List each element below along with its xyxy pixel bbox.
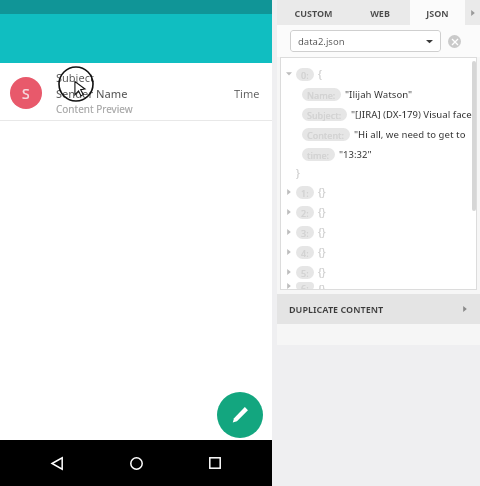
button[interactable]: 0: bbox=[280, 64, 477, 84]
button[interactable]: 2: bbox=[280, 202, 477, 222]
staticText: {} bbox=[318, 282, 326, 290]
button[interactable]: 6: bbox=[280, 282, 477, 290]
staticText: S bbox=[22, 84, 30, 103]
button[interactable]: DUPLICATE CONTENT bbox=[277, 294, 480, 324]
button[interactable]: 3: bbox=[280, 222, 477, 242]
staticText: DUPLICATE CONTENT bbox=[289, 303, 384, 315]
button[interactable]: More tabs bbox=[465, 0, 480, 25]
staticText: data2.json bbox=[298, 35, 345, 48]
button[interactable]: 1: bbox=[280, 182, 477, 202]
staticText: "Hi all, we need to get to this bbox=[354, 128, 477, 141]
staticText: Sender Name bbox=[56, 86, 128, 101]
staticText: { bbox=[318, 67, 322, 81]
button[interactable]: CUSTOM bbox=[277, 0, 350, 25]
staticText: {} bbox=[318, 265, 326, 279]
staticText: 3: bbox=[301, 227, 309, 239]
staticText: 2: bbox=[301, 207, 309, 219]
staticText: {} bbox=[318, 245, 326, 259]
staticText: Subject bbox=[56, 70, 94, 85]
button[interactable]: Compose bbox=[217, 392, 263, 438]
button[interactable]: Back bbox=[44, 450, 70, 476]
staticText: 1: bbox=[301, 187, 309, 199]
staticText: 4: bbox=[301, 247, 309, 259]
staticText: 0: bbox=[301, 69, 309, 81]
staticText: {} bbox=[318, 185, 326, 199]
staticText: "[JIRA] (DX-179) Visual facel bbox=[351, 108, 475, 121]
staticText: "Ilijah Watson" bbox=[345, 88, 413, 101]
button[interactable]: WEB bbox=[350, 0, 410, 25]
button[interactable]: data2.json bbox=[290, 30, 441, 52]
button[interactable]: 5: bbox=[280, 262, 477, 282]
staticText: time: bbox=[307, 149, 330, 161]
button[interactable]: JSON bbox=[410, 0, 465, 25]
button[interactable]: time: bbox=[280, 144, 477, 164]
staticText: Subject: bbox=[307, 109, 342, 121]
staticText: CUSTOM bbox=[294, 7, 333, 19]
staticText: } bbox=[296, 166, 300, 180]
staticText: 5: bbox=[301, 267, 309, 279]
staticText: WEB bbox=[370, 7, 390, 19]
button[interactable]: S bbox=[0, 66, 272, 120]
staticText: Content: bbox=[307, 129, 345, 141]
staticText: Time bbox=[234, 86, 260, 101]
button[interactable]: 4: bbox=[280, 242, 477, 262]
button[interactable]: Content: bbox=[280, 124, 477, 144]
button[interactable]: Name: bbox=[280, 84, 477, 104]
staticText: Name: bbox=[307, 89, 336, 101]
staticText: Content Preview bbox=[56, 102, 133, 116]
staticText: "13:32" bbox=[339, 148, 372, 161]
staticText: {} bbox=[318, 205, 326, 219]
staticText: 6: bbox=[301, 282, 309, 290]
staticText: JSON bbox=[426, 7, 449, 19]
button[interactable]: Clear file bbox=[448, 35, 461, 48]
button[interactable]: Home bbox=[123, 450, 149, 476]
button[interactable]: Recents bbox=[202, 450, 228, 476]
staticText: {} bbox=[318, 225, 326, 239]
button[interactable]: Subject: bbox=[280, 104, 477, 124]
